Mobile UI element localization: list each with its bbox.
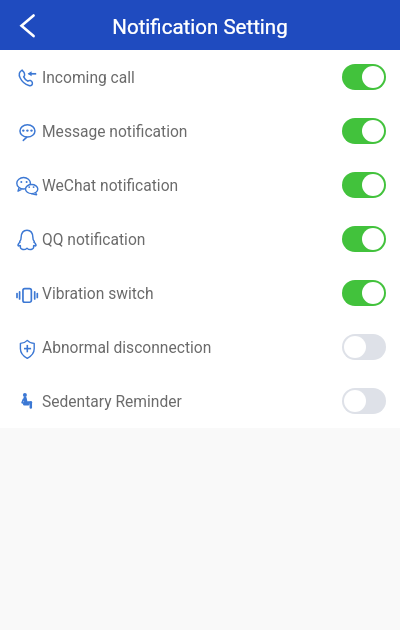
button[interactable]: Incoming call toggle bbox=[342, 64, 386, 90]
button[interactable]: Sedentary Reminder bbox=[0, 374, 400, 428]
button[interactable]: Abnormal disconnection toggle bbox=[342, 334, 386, 360]
staticText: Message notification bbox=[42, 123, 188, 141]
button[interactable]: Incoming call bbox=[0, 50, 400, 104]
button[interactable]: Vibration switch bbox=[0, 266, 400, 320]
staticText: Notification Setting bbox=[112, 15, 288, 39]
button[interactable]: Message notification bbox=[0, 104, 400, 158]
button[interactable]: Message notification toggle bbox=[342, 118, 386, 144]
button[interactable]: WeChat notification bbox=[0, 158, 400, 212]
staticText: WeChat notification bbox=[42, 177, 179, 195]
button[interactable]: QQ notification bbox=[0, 212, 400, 266]
staticText: Incoming call bbox=[42, 69, 135, 87]
staticText: QQ notification bbox=[42, 231, 146, 249]
button[interactable]: Back bbox=[0, 1, 48, 49]
button[interactable]: WeChat notification toggle bbox=[342, 172, 386, 198]
button[interactable]: Vibration switch toggle bbox=[342, 280, 386, 306]
staticText: Vibration switch bbox=[42, 285, 154, 303]
staticText: Sedentary Reminder bbox=[42, 393, 182, 411]
button[interactable]: QQ notification toggle bbox=[342, 226, 386, 252]
button[interactable]: Abnormal disconnection bbox=[0, 320, 400, 374]
button[interactable]: Sedentary Reminder toggle bbox=[342, 388, 386, 414]
staticText: Abnormal disconnection bbox=[42, 339, 212, 357]
